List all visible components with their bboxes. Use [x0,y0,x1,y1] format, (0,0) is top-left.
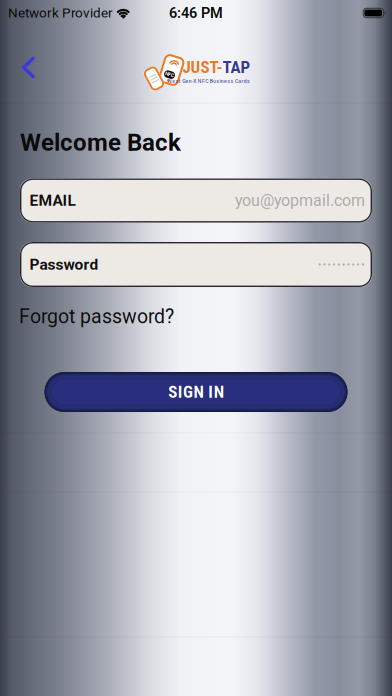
button[interactable]: Forgot password? [19,305,174,328]
staticText: TAP [222,57,250,77]
staticText: SIGN IN [168,382,224,402]
staticText: Network Provider [8,5,113,21]
staticText: Forgot password? [19,305,174,328]
button[interactable]: Password [20,242,372,287]
staticText: Next Gen-X NFC Business Cards [168,77,250,84]
staticText: Welcome Back [20,128,181,156]
staticText: 6:46 PM [169,4,223,21]
button[interactable]: SIGN IN [44,372,347,412]
button[interactable]: EMAIL [20,178,372,222]
staticText: EMAIL [29,191,75,210]
staticText: JUST- [182,57,222,77]
staticText: Password [29,255,98,274]
staticText: you@yopmail.com [235,191,365,210]
staticText: NFC [166,72,175,78]
button[interactable]: Back [10,46,46,88]
